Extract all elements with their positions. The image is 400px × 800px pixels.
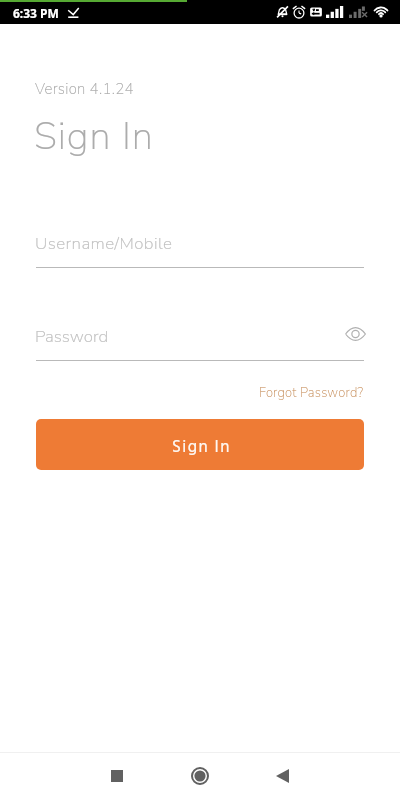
button[interactable]: Back (260, 754, 304, 798)
staticText: Version 4.1.24 (35, 79, 134, 99)
staticText: Sign In (172, 434, 231, 461)
staticText: Username/Mobile (35, 232, 173, 255)
button[interactable]: Show password (342, 323, 368, 345)
button[interactable]: Forgot Password? (251, 376, 364, 402)
button[interactable]: Recents (95, 754, 139, 798)
button[interactable]: Home (178, 754, 222, 798)
button[interactable]: Sign In (36, 419, 364, 470)
staticText: 6:33 PM (13, 5, 59, 21)
staticText: Forgot Password? (259, 384, 364, 402)
staticText: Sign In (34, 111, 154, 163)
staticText: Password (35, 325, 109, 348)
